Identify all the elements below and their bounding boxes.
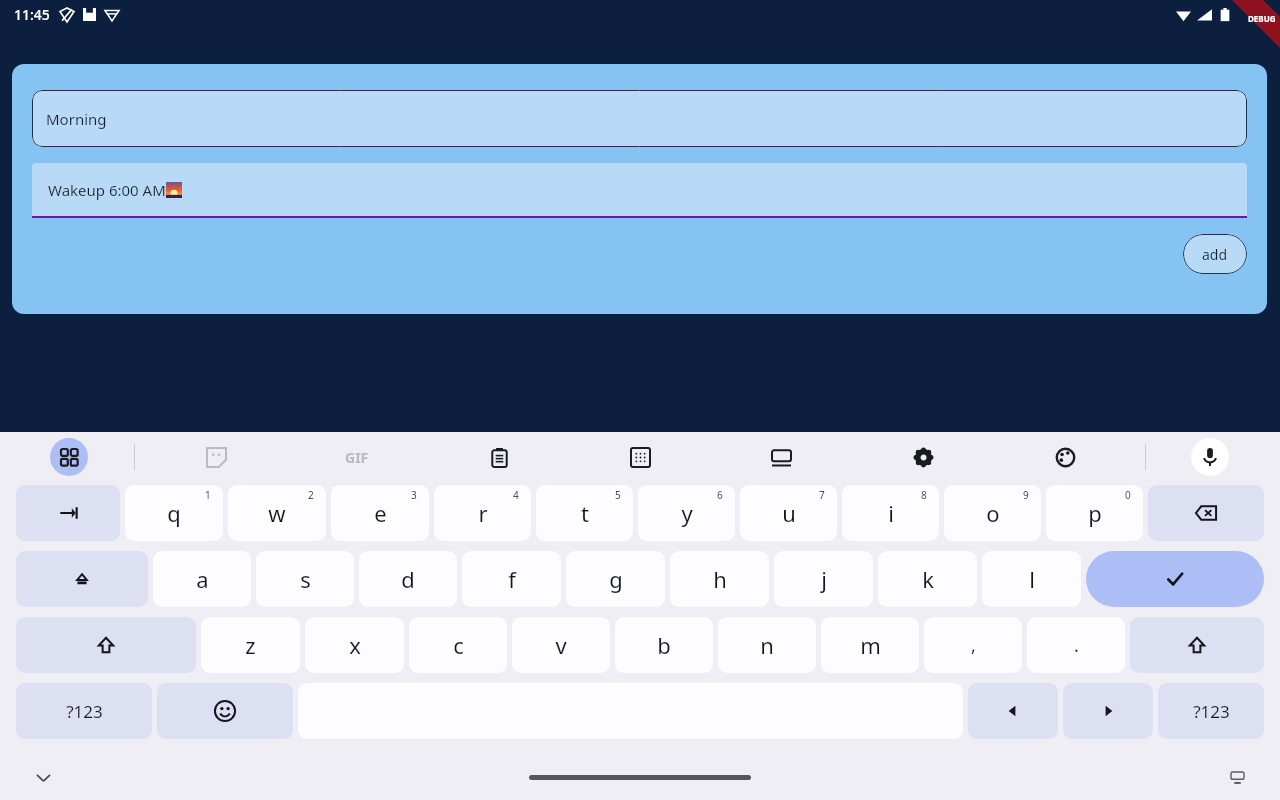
button[interactable]: Shift [1130, 617, 1264, 673]
button[interactable]: Stickers [196, 437, 236, 477]
staticText: 1 [205, 488, 211, 502]
staticText: 8 [921, 488, 927, 502]
button[interactable]: Tab [16, 485, 120, 541]
button[interactable]: v [512, 617, 610, 673]
button[interactable]: Switch keyboard [1224, 764, 1250, 790]
staticText: 5 [615, 488, 621, 502]
button[interactable]: Apps [50, 438, 88, 476]
staticText: f [508, 564, 516, 594]
button[interactable]: add [1183, 234, 1247, 274]
button[interactable]: n [718, 617, 816, 673]
staticText: m [860, 630, 881, 660]
button[interactable]: b [615, 617, 713, 673]
staticText: 6 [717, 488, 723, 502]
button[interactable]: f [462, 551, 561, 607]
button[interactable]: l [982, 551, 1081, 607]
staticText: a [196, 564, 209, 594]
staticText: , [971, 633, 976, 658]
button[interactable]: s [256, 551, 354, 607]
staticText: ?123 [66, 700, 103, 723]
button[interactable]: Shift [16, 617, 196, 673]
staticText: 4 [513, 488, 519, 502]
staticText: add [1202, 245, 1228, 264]
button[interactable]: Voice input [1191, 438, 1229, 476]
button[interactable]: Themes [1045, 437, 1085, 477]
button[interactable]: r [434, 485, 531, 541]
staticText: h [713, 564, 727, 594]
button[interactable]: q [125, 485, 223, 541]
staticText: Wakeup 6:00 AM [48, 180, 166, 200]
button[interactable]: p [1046, 485, 1143, 541]
staticText: s [300, 564, 311, 594]
staticText: g [609, 564, 623, 594]
staticText: GIF [345, 448, 369, 467]
staticText: 7 [819, 488, 825, 502]
button[interactable]: GIF [337, 437, 377, 477]
button[interactable]: o [944, 485, 1041, 541]
button[interactable]: m [821, 617, 919, 673]
staticText: x [349, 630, 361, 660]
staticText: p [1088, 498, 1102, 528]
staticText: c [453, 630, 464, 660]
button[interactable]: e [331, 485, 429, 541]
button[interactable]: Cursor right [1063, 683, 1153, 739]
staticText: 11:45 [14, 5, 50, 24]
button[interactable]: w [228, 485, 326, 541]
button[interactable]: c [409, 617, 507, 673]
staticText: r [478, 498, 488, 528]
button[interactable]: Settings [903, 437, 943, 477]
staticText: t [581, 498, 589, 528]
staticText: n [760, 630, 774, 660]
button[interactable]: y [638, 485, 735, 541]
button[interactable]: Hide keyboard [28, 762, 58, 792]
staticText: 2 [308, 488, 314, 502]
staticText: b [657, 630, 671, 660]
staticText: d [401, 564, 415, 594]
button[interactable]: x [305, 617, 404, 673]
staticText: 3 [411, 488, 417, 502]
button[interactable]: h [670, 551, 769, 607]
staticText: Morning [46, 109, 107, 129]
button[interactable]: ?123 [16, 683, 152, 739]
button[interactable]: Wakeup 6:00 AM [32, 163, 1247, 218]
staticText: j [821, 564, 827, 594]
staticText: 0 [1125, 488, 1131, 502]
button[interactable]: Cursor left [968, 683, 1058, 739]
button[interactable]: Emoji [157, 683, 293, 739]
button[interactable]: Backspace [1148, 485, 1264, 541]
button[interactable]: t [536, 485, 633, 541]
button[interactable]: . [1027, 617, 1125, 673]
button[interactable]: g [566, 551, 665, 607]
staticText: e [374, 498, 387, 528]
button[interactable]: j [774, 551, 873, 607]
button[interactable]: Clipboard [479, 437, 519, 477]
button[interactable]: a [153, 551, 251, 607]
staticText: 9 [1023, 488, 1029, 502]
staticText: u [782, 498, 796, 528]
button[interactable]: Keyboard mode [761, 437, 801, 477]
button[interactable]: Caps lock [16, 551, 148, 607]
button[interactable]: , [924, 617, 1022, 673]
staticText: w [268, 498, 286, 528]
button[interactable]: Enter [1086, 551, 1264, 607]
staticText: z [245, 630, 256, 660]
staticText: q [167, 498, 181, 528]
button[interactable]: k [878, 551, 977, 607]
staticText: l [1029, 564, 1035, 594]
staticText: DEBUG [1248, 13, 1276, 24]
button[interactable]: ?123 [1158, 683, 1264, 739]
button[interactable]: u [740, 485, 837, 541]
button[interactable]: d [359, 551, 457, 607]
staticText: k [922, 564, 934, 594]
button[interactable]: Text editing [620, 437, 660, 477]
button[interactable]: Morning [32, 90, 1247, 147]
button[interactable]: i [842, 485, 939, 541]
staticText: v [555, 630, 567, 660]
button[interactable]: z [201, 617, 300, 673]
staticText: y [681, 498, 693, 528]
staticText: ?123 [1193, 700, 1230, 723]
staticText: o [986, 498, 1000, 528]
staticText: i [888, 498, 894, 528]
staticText: . [1074, 633, 1079, 658]
